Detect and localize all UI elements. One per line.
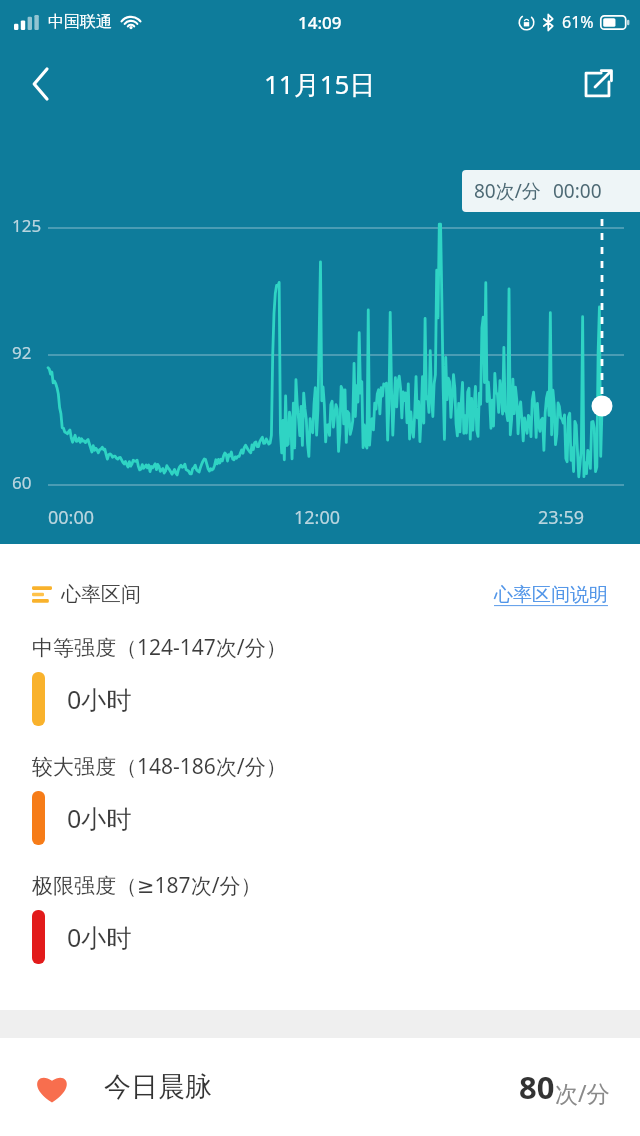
staticText: 80: [519, 1066, 555, 1108]
button[interactable]: 极限强度（≥187次/分）: [32, 871, 640, 964]
staticText: 60: [12, 471, 32, 494]
staticText: 极限强度（≥187次/分）: [32, 871, 262, 900]
staticText: 61%: [562, 11, 594, 33]
staticText: 心率区间: [61, 582, 141, 607]
button[interactable]: 心率区间说明: [494, 583, 608, 607]
button[interactable]: Back: [10, 53, 72, 115]
staticText: 0小时: [67, 801, 132, 835]
staticText: 92: [12, 341, 32, 364]
staticText: 中等强度（124-147次/分）: [32, 633, 287, 662]
staticText: 心率区间说明: [494, 583, 608, 607]
staticText: 0小时: [67, 682, 132, 716]
staticText: 80次/分: [474, 178, 541, 204]
staticText: 次/分: [555, 1077, 610, 1108]
button[interactable]: 较大强度（148-186次/分）: [32, 752, 640, 845]
staticText: 较大强度（148-186次/分）: [32, 752, 287, 781]
staticText: 23:59: [538, 505, 585, 530]
staticText: 00:00: [553, 178, 602, 204]
staticText: 14:09: [298, 11, 342, 34]
staticText: 12:00: [294, 505, 341, 530]
staticText: 125: [12, 214, 42, 237]
button[interactable]: Share: [568, 55, 626, 113]
staticText: 今日晨脉: [104, 1070, 212, 1104]
button[interactable]: 今日晨脉: [0, 1038, 640, 1136]
staticText: 11月15日: [264, 66, 376, 102]
staticText: 0小时: [67, 920, 132, 954]
staticText: 中国联通: [48, 12, 112, 32]
button[interactable]: 中等强度（124-147次/分）: [32, 633, 640, 726]
staticText: 00:00: [48, 505, 95, 530]
